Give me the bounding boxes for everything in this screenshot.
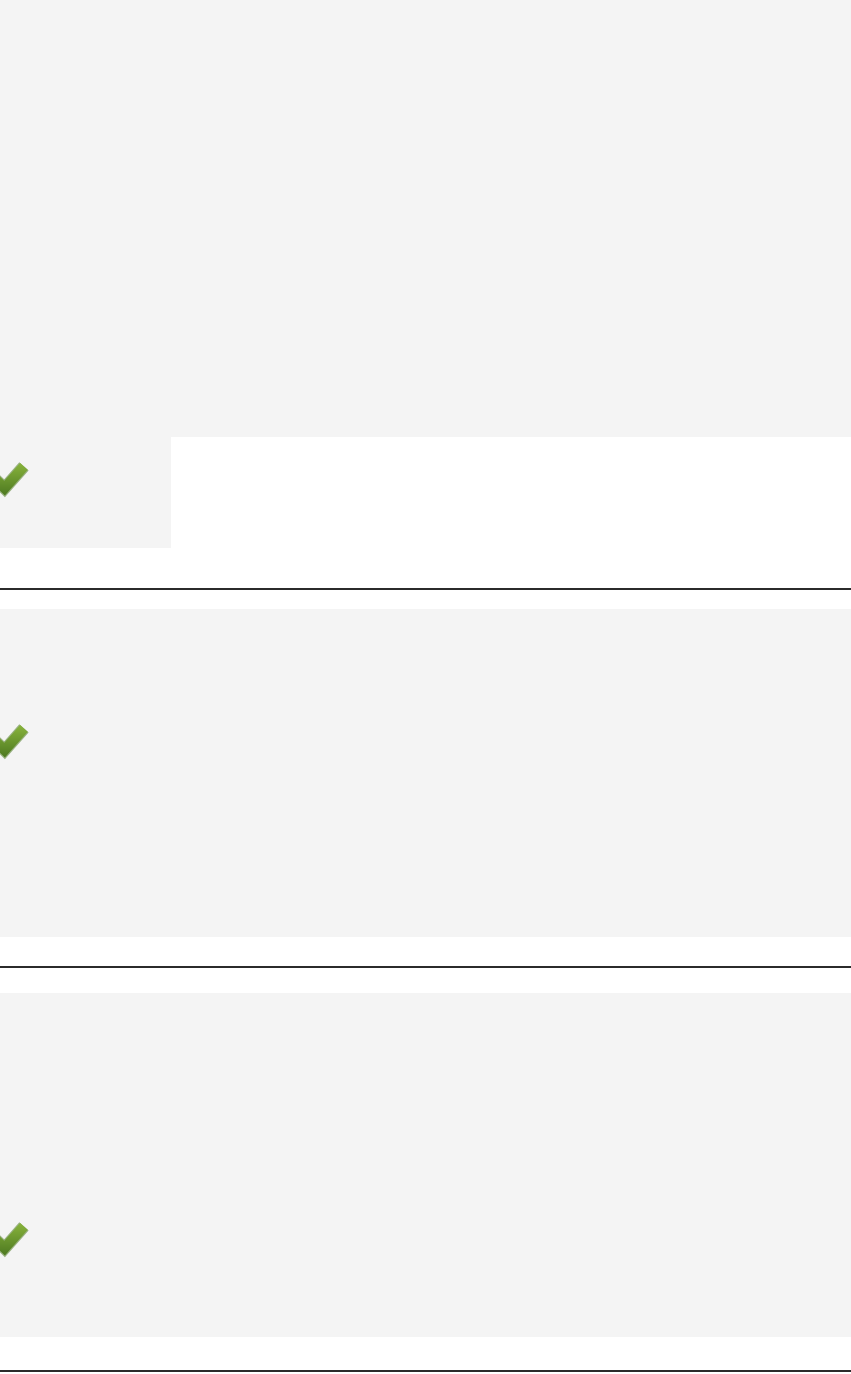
other: Selected [0,723,26,757]
button[interactable]: Selected [0,437,851,548]
other: Selected [0,1221,26,1255]
button[interactable]: Selected [0,993,851,1337]
other: Selected [0,461,26,495]
button[interactable]: Selected [0,609,851,937]
